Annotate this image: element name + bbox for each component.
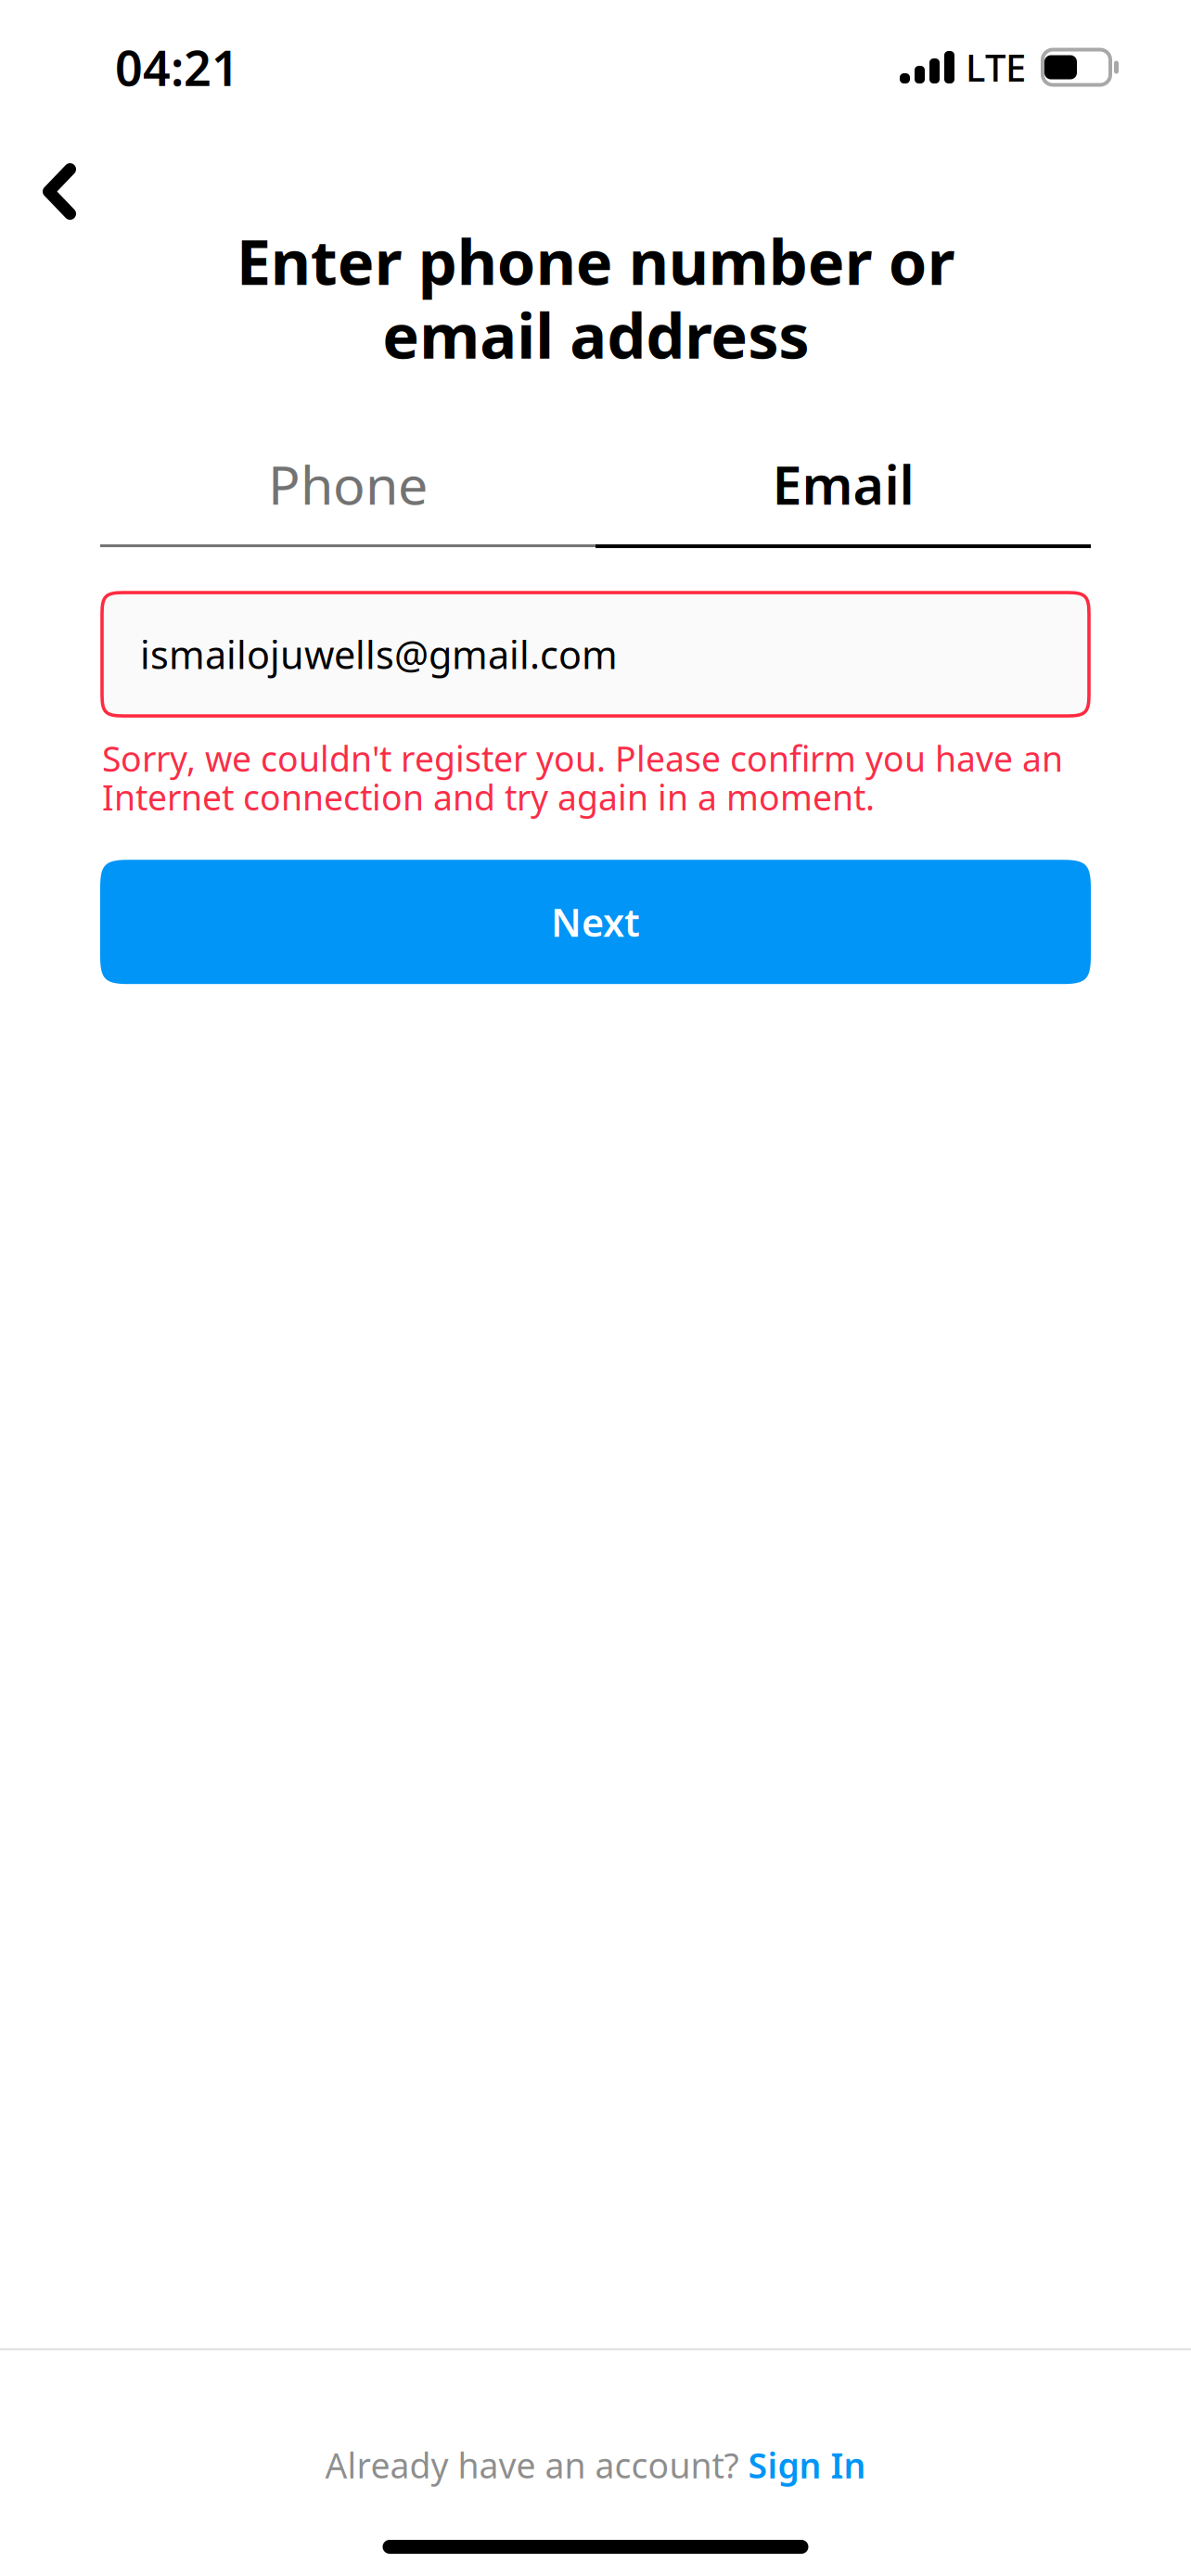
staticText: Already have an account? bbox=[325, 2442, 748, 2488]
button[interactable]: Email bbox=[595, 449, 1091, 549]
staticText: Enter phone number or email address bbox=[236, 220, 955, 376]
button[interactable]: Next bbox=[100, 860, 1091, 984]
button[interactable]: Phone bbox=[100, 449, 595, 549]
staticText: ismailojuwells@gmail.com bbox=[140, 629, 618, 680]
staticText: LTE bbox=[966, 43, 1026, 92]
staticText: Email bbox=[772, 449, 914, 519]
staticText: Phone bbox=[268, 449, 428, 519]
textField[interactable]: ismailojuwells@gmail.com bbox=[102, 593, 1089, 716]
staticText: 04:21 bbox=[115, 35, 239, 99]
staticText: Sign In bbox=[748, 2442, 866, 2488]
button[interactable]: Already have an account? bbox=[0, 2350, 1191, 2540]
staticText: Sorry, we couldn't register you. Please … bbox=[102, 735, 1063, 820]
button[interactable]: Back bbox=[0, 145, 108, 220]
staticText: Next bbox=[551, 896, 640, 947]
